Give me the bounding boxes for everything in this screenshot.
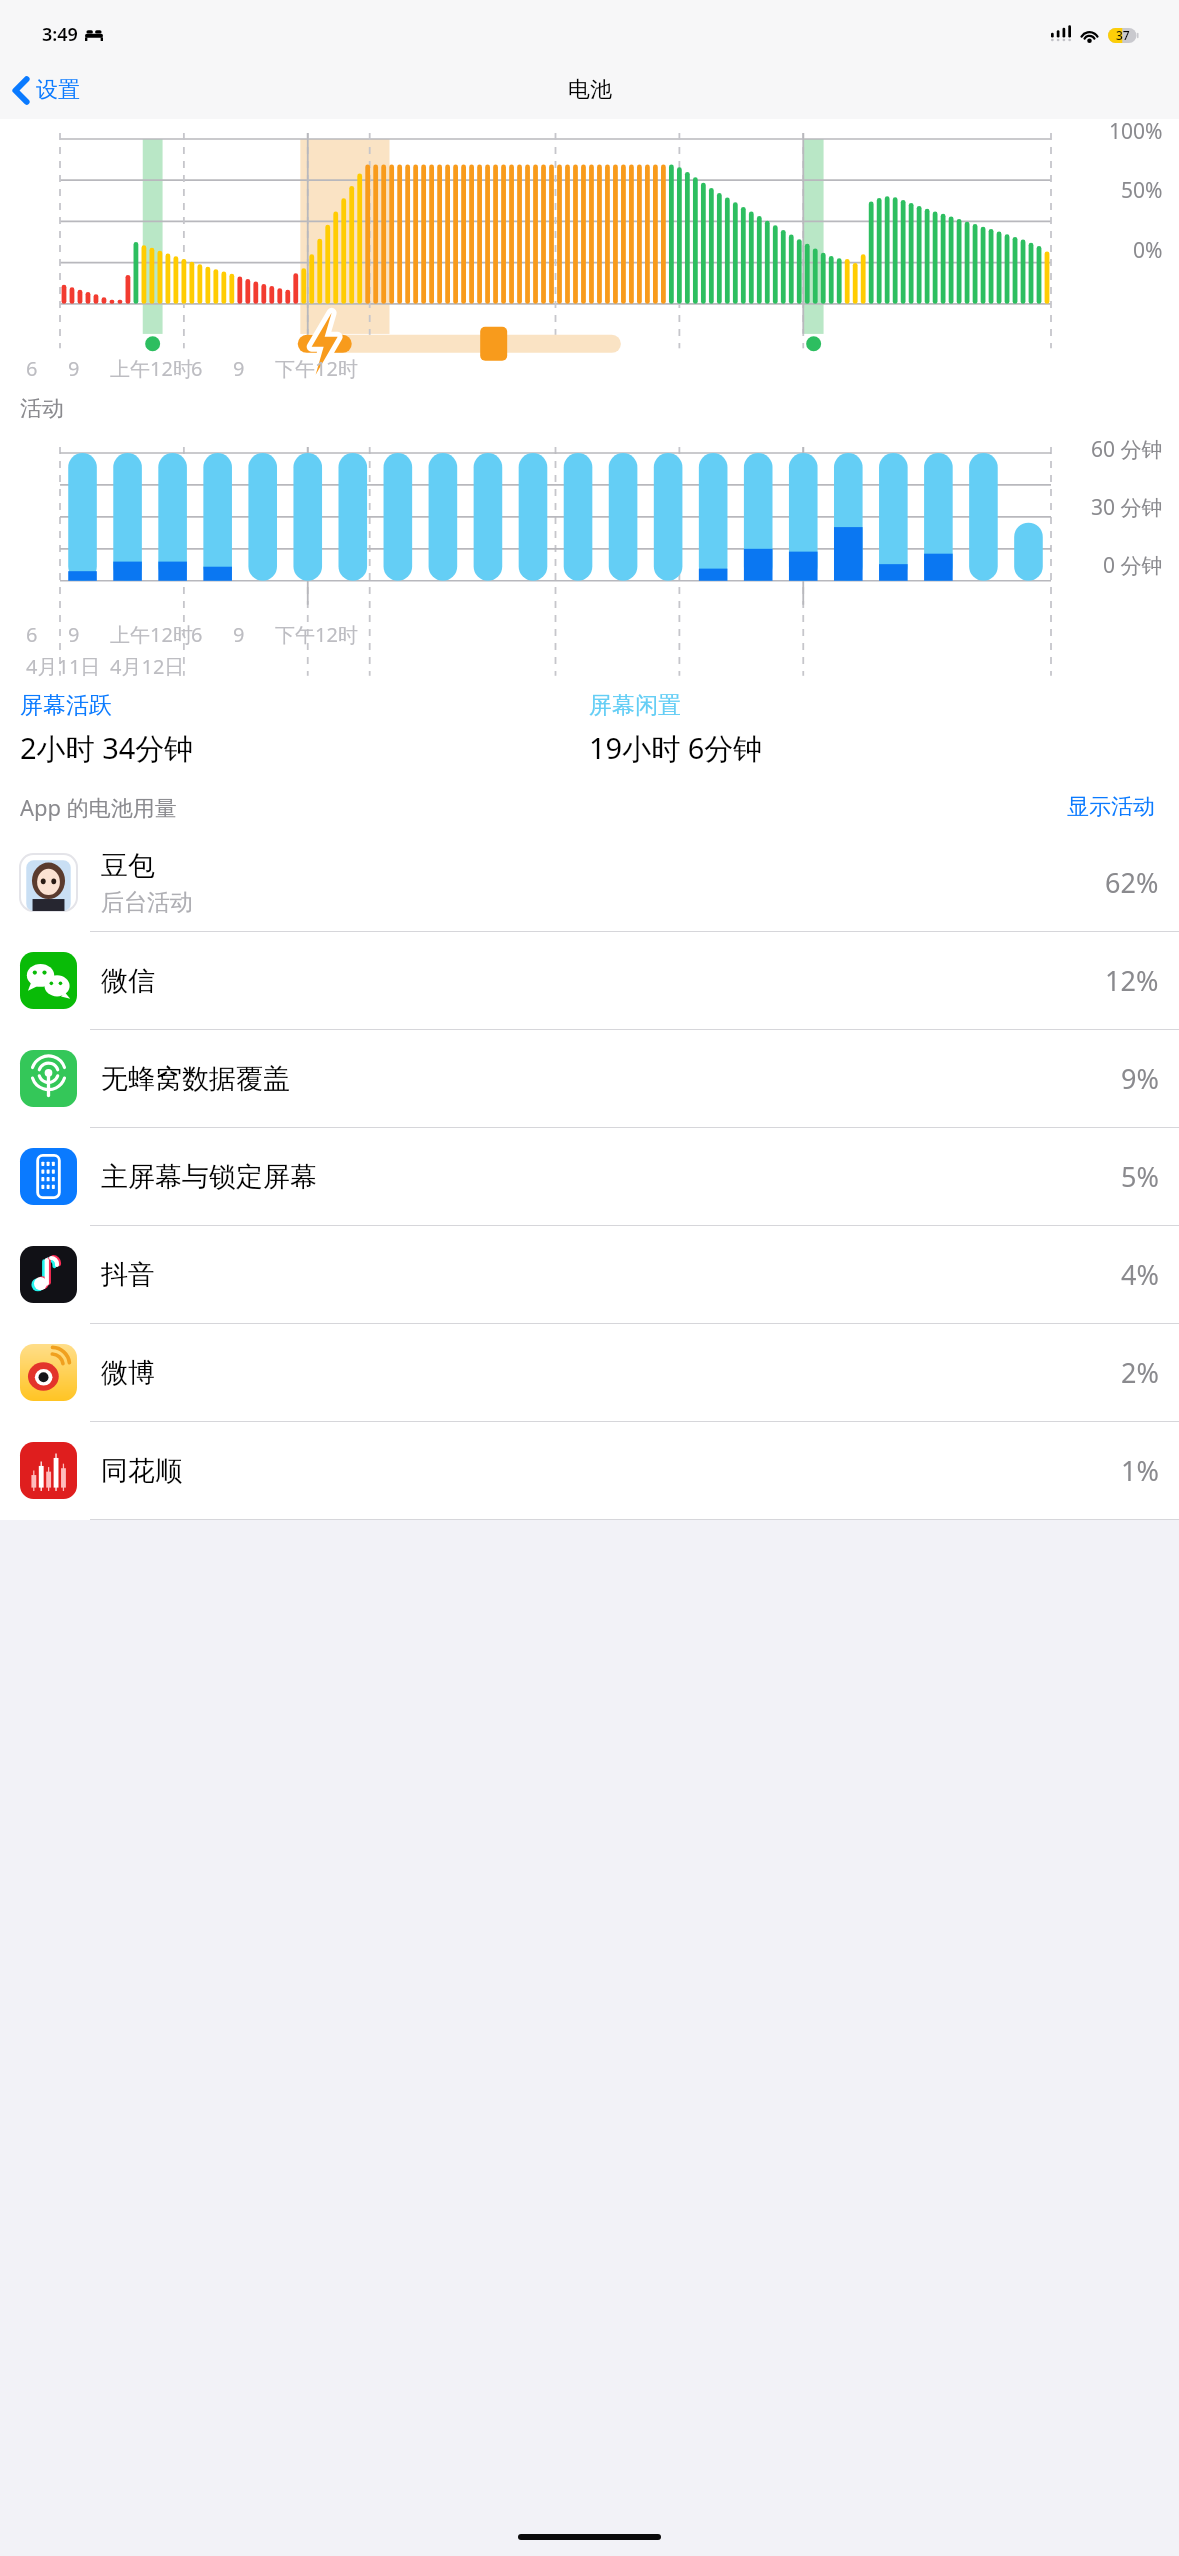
staticText: 后台活动 bbox=[101, 888, 193, 917]
staticText: 50% bbox=[1121, 176, 1163, 205]
staticText: 9% bbox=[1121, 1060, 1159, 1097]
staticText: 6 bbox=[191, 621, 203, 648]
button[interactable]: 设置 bbox=[0, 68, 94, 112]
staticText: 屏幕活跃 bbox=[20, 691, 112, 720]
staticText: 电池 bbox=[568, 76, 612, 104]
staticText: 抖音 bbox=[101, 1258, 155, 1292]
staticText: 12% bbox=[1105, 962, 1159, 999]
staticText: 60 分钟 bbox=[1091, 435, 1163, 464]
staticText: 37 bbox=[1116, 27, 1130, 43]
button[interactable]: 同花顺 bbox=[0, 1422, 1179, 1520]
staticText: 下午12时 bbox=[275, 621, 358, 648]
button[interactable]: 无蜂窝数据覆盖 bbox=[0, 1030, 1179, 1128]
staticText: 6 bbox=[26, 621, 38, 648]
staticText: 4月11日 bbox=[26, 653, 101, 680]
button[interactable]: 微信 bbox=[0, 932, 1179, 1030]
staticText: 2小时 34分钟 bbox=[20, 728, 194, 768]
staticText: 微信 bbox=[101, 964, 155, 998]
staticText: 4月12日 bbox=[110, 653, 185, 680]
staticText: 100% bbox=[1109, 117, 1163, 146]
staticText: 0% bbox=[1133, 236, 1163, 265]
button[interactable]: 微博 bbox=[0, 1324, 1179, 1422]
staticText: 同花顺 bbox=[101, 1454, 182, 1488]
staticText: 设置 bbox=[36, 76, 80, 104]
button[interactable]: 主屏幕与锁定屏幕 bbox=[0, 1128, 1179, 1226]
button[interactable]: 显示活动 bbox=[1063, 789, 1159, 825]
staticText: 无蜂窝数据覆盖 bbox=[101, 1062, 290, 1096]
staticText: 6 bbox=[26, 355, 38, 382]
staticText: 62% bbox=[1105, 864, 1159, 901]
staticText: 4% bbox=[1121, 1256, 1159, 1293]
staticText: 9 bbox=[233, 621, 245, 648]
staticText: 上午12时 bbox=[110, 355, 193, 382]
staticText: 3:49 bbox=[42, 22, 78, 47]
staticText: 2% bbox=[1121, 1354, 1159, 1391]
staticText: 屏幕闲置 bbox=[589, 691, 681, 720]
staticText: 显示活动 bbox=[1067, 793, 1155, 821]
staticText: 活动 bbox=[20, 395, 64, 423]
staticText: App 的电池用量 bbox=[20, 792, 177, 822]
staticText: 9 bbox=[68, 355, 80, 382]
staticText: 1% bbox=[1121, 1452, 1159, 1489]
staticText: 主屏幕与锁定屏幕 bbox=[101, 1160, 317, 1194]
button[interactable]: 豆包 bbox=[0, 834, 1179, 932]
button[interactable]: 抖音 bbox=[0, 1226, 1179, 1324]
staticText: 下午12时 bbox=[275, 355, 358, 382]
staticText: 豆包 bbox=[101, 849, 155, 883]
staticText: 上午12时 bbox=[110, 621, 193, 648]
staticText: 9 bbox=[233, 355, 245, 382]
staticText: 19小时 6分钟 bbox=[589, 728, 763, 768]
staticText: 5% bbox=[1121, 1158, 1159, 1195]
staticText: 微博 bbox=[101, 1356, 155, 1390]
staticText: 9 bbox=[68, 621, 80, 648]
staticText: 0 分钟 bbox=[1103, 551, 1163, 580]
staticText: 30 分钟 bbox=[1091, 493, 1163, 522]
staticText: 6 bbox=[191, 355, 203, 382]
